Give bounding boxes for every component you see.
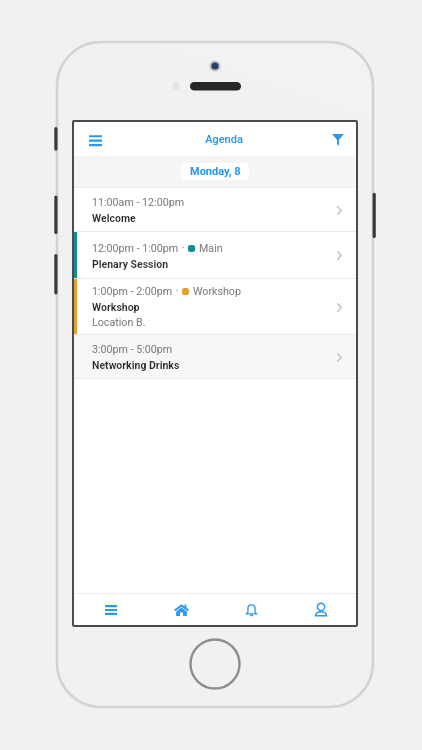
- staticText: Main: [199, 242, 223, 255]
- staticText: 11:00am - 12:00pm: [92, 196, 185, 209]
- staticText: Welcome: [92, 212, 136, 224]
- button[interactable]: Menu: [75, 594, 146, 625]
- staticText: 3:00pm - 5:00pm: [92, 343, 173, 356]
- button[interactable]: Profile: [286, 594, 356, 625]
- button[interactable]: 11:00am - 12:00pm: [74, 188, 356, 232]
- button[interactable]: 3:00pm - 5:00pm: [74, 335, 356, 379]
- staticText: Location B.: [92, 316, 146, 329]
- staticText: Workshop: [92, 301, 140, 313]
- button[interactable]: Home: [146, 594, 216, 625]
- button[interactable]: 12:00pm - 1:00pm: [74, 232, 356, 279]
- staticText: Agenda: [205, 133, 243, 146]
- staticText: Plenary Session: [92, 258, 169, 270]
- button[interactable]: Menu: [81, 126, 109, 154]
- button[interactable]: Filter: [324, 126, 352, 154]
- button[interactable]: 1:00pm - 2:00pm: [74, 279, 356, 335]
- staticText: Monday, 8: [190, 165, 241, 178]
- staticText: 12:00pm - 1:00pm: [92, 242, 179, 255]
- staticText: Networking Drinks: [92, 359, 180, 371]
- staticText: ·: [173, 285, 182, 298]
- staticText: 1:00pm - 2:00pm: [92, 285, 173, 298]
- staticText: Workshop: [193, 285, 241, 298]
- button[interactable]: Notifications: [216, 594, 286, 625]
- staticText: ·: [179, 242, 188, 255]
- button[interactable]: Monday, 8: [181, 163, 249, 180]
